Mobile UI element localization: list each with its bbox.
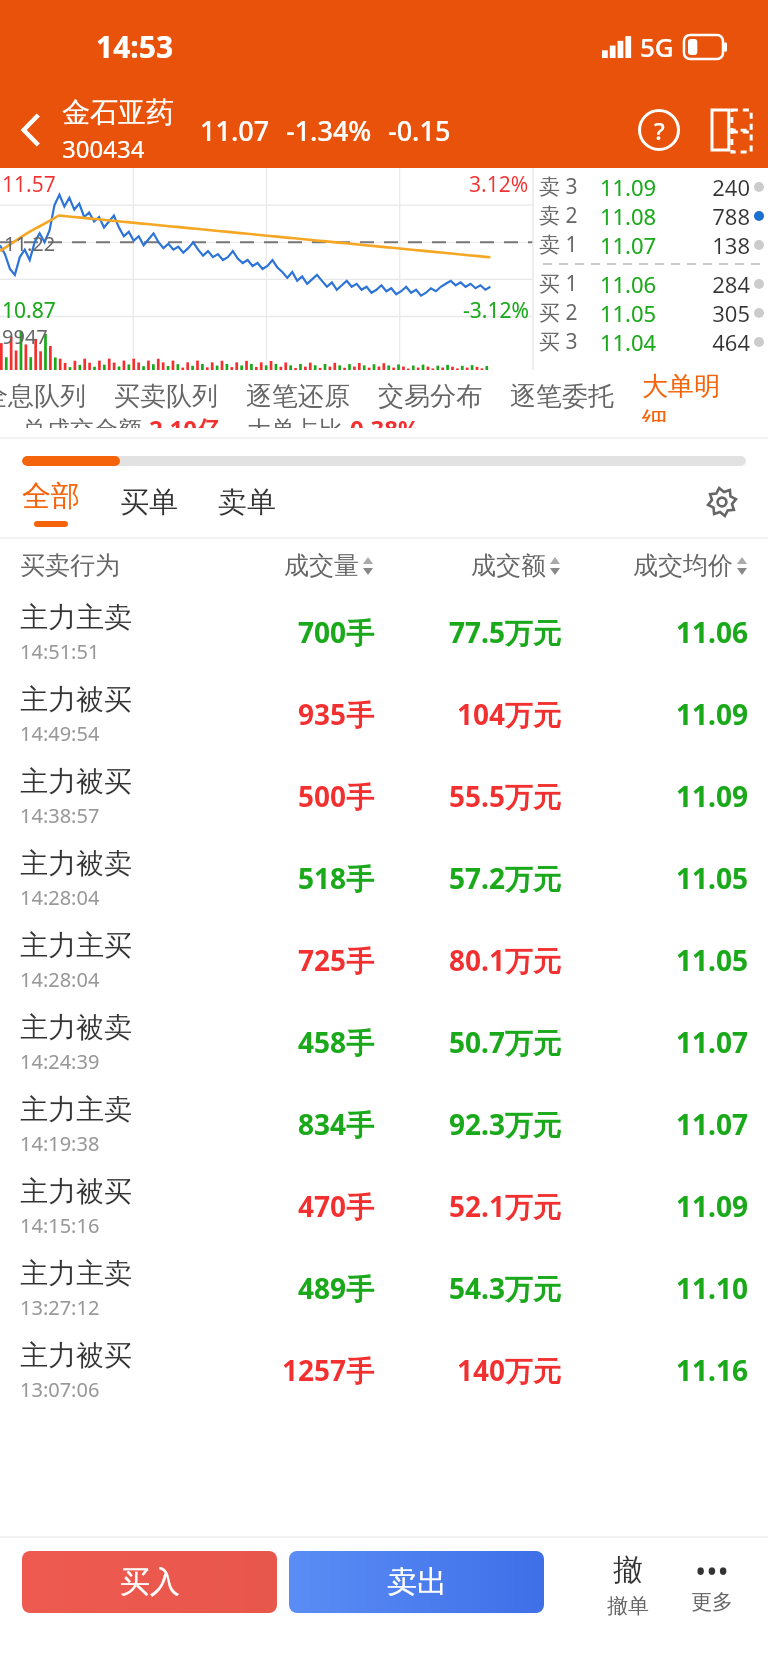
button[interactable]: 卖 1 — [539, 230, 764, 259]
button[interactable]: 成交量 — [188, 550, 374, 581]
staticText: 11.09 — [591, 172, 665, 201]
staticText: 主力被卖 — [20, 846, 132, 881]
staticText: 买卖行为 — [20, 550, 188, 581]
staticText: 55.5万元 — [374, 777, 561, 815]
button[interactable]: 主力被买 — [20, 1329, 748, 1411]
staticText: 104万元 — [374, 695, 561, 733]
staticText: -0.15 — [388, 112, 451, 149]
staticText: 卖 3 — [539, 172, 591, 201]
staticText: -1.34% — [286, 112, 372, 149]
staticText: ? — [654, 114, 665, 147]
staticText: 主力主卖 — [20, 600, 132, 635]
staticText: 14:24:39 — [20, 1048, 100, 1075]
staticText: 买入 — [120, 1563, 180, 1601]
button[interactable]: 卖单 — [218, 484, 276, 521]
staticText: 284 — [665, 269, 750, 298]
staticText: 11.57 — [2, 170, 56, 199]
button[interactable]: 卖 3 — [539, 172, 764, 201]
staticText: 458手 — [188, 1023, 374, 1061]
staticText: 834手 — [188, 1105, 374, 1143]
button[interactable]: Settings — [698, 478, 746, 526]
staticText: 14:15:16 — [20, 1212, 100, 1239]
button[interactable]: 买 3 — [539, 327, 764, 356]
button[interactable]: 全息队列 — [0, 370, 86, 422]
button[interactable]: Layout — [702, 97, 760, 163]
staticText: 77.5万元 — [374, 613, 561, 651]
staticText: 138 — [665, 230, 750, 259]
staticText: 13:27:12 — [20, 1294, 100, 1321]
button[interactable]: Help — [626, 97, 692, 163]
staticText: 300434 — [62, 132, 145, 165]
staticText: 主力被买 — [20, 1174, 132, 1209]
staticText: 全部 — [22, 478, 80, 515]
staticText: 买 3 — [539, 327, 591, 356]
staticText: 买 2 — [539, 298, 591, 327]
staticText: 50.7万元 — [374, 1023, 561, 1061]
staticText: 11.09 — [561, 777, 748, 815]
staticText: 11.05 — [591, 298, 665, 327]
button[interactable]: Back — [0, 92, 62, 168]
button[interactable]: 主力主卖 — [20, 1083, 748, 1165]
button[interactable]: 全部 — [22, 478, 80, 527]
button[interactable]: 买卖队列 — [114, 370, 218, 422]
staticText: 14:51:51 — [20, 638, 100, 665]
button[interactable]: 大单明细 — [642, 370, 722, 422]
staticText: 14:28:04 — [20, 884, 100, 911]
button[interactable]: 卖出 — [289, 1551, 544, 1613]
staticText: 305 — [665, 298, 750, 327]
button[interactable]: 买 1 — [539, 269, 764, 298]
staticText: 成交量 — [284, 550, 359, 581]
button[interactable]: 交易分布 — [378, 370, 482, 422]
staticText: 11.09 — [561, 1187, 748, 1225]
staticText: 11.07 — [561, 1105, 748, 1143]
staticText: 14:28:04 — [20, 966, 100, 993]
button[interactable]: 撤 — [586, 1551, 670, 1619]
staticText: 卖单 — [218, 484, 276, 521]
staticText: 11.07 — [561, 1023, 748, 1061]
staticText: 92.3万元 — [374, 1105, 561, 1143]
button[interactable]: 成交额 — [374, 550, 561, 581]
button[interactable]: ••• — [670, 1551, 754, 1615]
button[interactable]: 主力主卖 — [20, 1247, 748, 1329]
button[interactable]: 卖 2 — [539, 201, 764, 230]
staticText: 主力主卖 — [20, 1092, 132, 1127]
staticText: 主力主卖 — [20, 1256, 132, 1291]
button[interactable]: 买 2 — [539, 298, 764, 327]
staticText: 逐笔委托 — [510, 380, 614, 413]
staticText: 卖 2 — [539, 201, 591, 230]
button[interactable]: 买单 — [120, 484, 178, 521]
staticText: 主力被买 — [20, 682, 132, 717]
staticText: 大单占比 — [247, 412, 350, 428]
staticText: 11.07 — [200, 112, 270, 149]
staticText: 撤 — [613, 1551, 643, 1589]
button[interactable]: 成交均价 — [561, 550, 748, 581]
staticText: 卖出 — [387, 1563, 447, 1601]
button[interactable]: 主力被买 — [20, 755, 748, 837]
staticText: 11.16 — [561, 1351, 748, 1389]
button[interactable]: 主力被买 — [20, 673, 748, 755]
staticText: 买单 — [120, 484, 178, 521]
button[interactable]: 主力被卖 — [20, 837, 748, 919]
staticText: 14:53 — [96, 26, 174, 67]
button[interactable]: 主力被买 — [20, 1165, 748, 1247]
staticText: 成交额 — [471, 550, 546, 581]
staticText: 11.04 — [591, 327, 665, 356]
staticText: 主力主买 — [20, 928, 132, 963]
button[interactable]: 逐笔委托 — [510, 370, 614, 422]
staticText: ••• — [695, 1551, 729, 1589]
staticText: 11.05 — [561, 941, 748, 979]
staticText: 464 — [665, 327, 750, 356]
staticText: 725手 — [188, 941, 374, 979]
button[interactable]: 主力被卖 — [20, 1001, 748, 1083]
button[interactable]: 买入 — [22, 1551, 277, 1613]
staticText: 57.2万元 — [374, 859, 561, 897]
staticText: 成交均价 — [633, 550, 733, 581]
staticText: 主力被卖 — [20, 1010, 132, 1045]
button[interactable]: 主力主买 — [20, 919, 748, 1001]
staticText: 11.06 — [561, 613, 748, 651]
staticText: 主力被买 — [20, 1338, 132, 1373]
button[interactable]: 主力主卖 — [20, 591, 748, 673]
staticText: 撤单 — [607, 1593, 649, 1619]
button[interactable]: 逐笔还原 — [246, 370, 350, 422]
staticText: 11.22 — [4, 230, 56, 257]
